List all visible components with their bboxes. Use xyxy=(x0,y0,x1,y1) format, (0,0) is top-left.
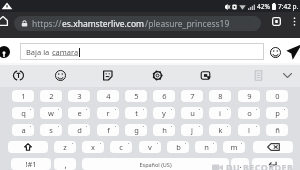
staticText: n xyxy=(204,142,209,152)
staticText: i xyxy=(219,108,221,118)
button[interactable]: m xyxy=(223,141,245,153)
staticText: camara xyxy=(52,47,79,57)
button[interactable]: v xyxy=(139,141,161,153)
button[interactable]: o xyxy=(238,107,260,119)
staticText: DU RECORDER xyxy=(226,161,294,170)
button[interactable]: g xyxy=(125,124,147,136)
button[interactable] xyxy=(252,158,293,170)
button[interactable]: , xyxy=(54,158,76,170)
button[interactable]: s xyxy=(40,124,62,136)
button[interactable]: Profile xyxy=(0,43,13,61)
staticText: c xyxy=(119,142,123,152)
button[interactable]: a xyxy=(12,124,34,136)
button[interactable]: r xyxy=(97,107,119,119)
staticText: 1 xyxy=(21,91,26,101)
button[interactable]: c xyxy=(110,141,132,153)
button[interactable]: Stickers xyxy=(96,63,118,87)
button[interactable]: Home xyxy=(0,8,10,34)
staticText: 7:42 p. xyxy=(278,2,299,11)
staticText: 7 xyxy=(190,91,195,101)
button[interactable]: !#1 xyxy=(11,158,51,170)
button[interactable]: Collapse xyxy=(279,63,295,87)
button[interactable]: 2 xyxy=(40,90,62,102)
button[interactable]: 4 xyxy=(97,90,119,102)
button[interactable]: Baja la xyxy=(20,43,264,60)
staticText: 5 xyxy=(134,91,139,101)
button[interactable]: . xyxy=(231,158,249,170)
staticText: . xyxy=(239,159,242,170)
staticText: l xyxy=(248,125,250,135)
button[interactable]: Media xyxy=(194,63,216,87)
button[interactable]: n xyxy=(195,141,217,153)
staticText: t xyxy=(135,108,138,118)
staticText: , xyxy=(64,159,67,170)
button[interactable]: l xyxy=(238,124,260,136)
staticText: j xyxy=(191,125,193,135)
button[interactable]: e xyxy=(68,107,90,119)
button[interactable] xyxy=(253,141,293,153)
staticText: 3 xyxy=(77,91,82,101)
staticText: a xyxy=(21,125,26,135)
staticText: /pleasure_princess19 xyxy=(145,18,230,30)
button[interactable]: Emoji xyxy=(266,43,284,61)
button[interactable]: 0 xyxy=(266,90,288,102)
staticText: https:// xyxy=(32,18,62,30)
staticText: r xyxy=(106,108,110,118)
button[interactable]: Tabs xyxy=(269,8,284,34)
button[interactable]: p xyxy=(266,107,288,119)
button[interactable]: f xyxy=(97,124,119,136)
button[interactable]: 3 xyxy=(68,90,90,102)
staticText: p xyxy=(275,108,280,118)
button[interactable]: h xyxy=(153,124,175,136)
button[interactable]: x xyxy=(82,141,104,153)
staticText: f xyxy=(107,125,110,135)
staticText: !#1 xyxy=(25,159,37,169)
staticText: y xyxy=(162,108,166,118)
button[interactable]: 1 xyxy=(12,90,34,102)
button[interactable]: 9 xyxy=(238,90,260,102)
button[interactable]: d xyxy=(68,124,90,136)
button[interactable]: Tokens xyxy=(7,63,29,87)
button[interactable]: j xyxy=(181,124,203,136)
staticText: 0 xyxy=(275,91,280,101)
staticText: Baja la xyxy=(26,47,52,57)
staticText: Español (US) xyxy=(139,161,172,168)
button[interactable]: t xyxy=(125,107,147,119)
button[interactable]: q xyxy=(12,107,34,119)
button[interactable]: 7 xyxy=(181,90,203,102)
staticText: w xyxy=(48,108,54,118)
button[interactable]: b xyxy=(167,141,189,153)
button[interactable]: Español (US) xyxy=(82,158,229,170)
button[interactable]: w xyxy=(40,107,62,119)
button[interactable]: u xyxy=(181,107,203,119)
staticText: x xyxy=(91,142,95,152)
staticText: h xyxy=(162,125,167,135)
button[interactable]: Notes xyxy=(247,63,269,87)
button[interactable]: 8 xyxy=(209,90,231,102)
staticText: b xyxy=(176,142,181,152)
button[interactable]: z xyxy=(54,141,76,153)
button[interactable]: i xyxy=(209,107,231,119)
staticText: 6 xyxy=(162,91,167,101)
button[interactable]: k xyxy=(209,124,231,136)
staticText: q xyxy=(21,108,26,118)
button[interactable]: y xyxy=(153,107,175,119)
button[interactable]: Send xyxy=(285,43,300,61)
staticText: z xyxy=(63,142,67,152)
staticText: es.xhamsterlive.com xyxy=(62,18,145,30)
staticText: 42% xyxy=(257,2,270,11)
staticText: 9 xyxy=(247,91,252,101)
button[interactable] xyxy=(8,141,48,153)
staticText: 2 xyxy=(49,91,54,101)
staticText: m xyxy=(230,142,238,152)
button[interactable]: More options xyxy=(289,8,300,34)
button[interactable]: 5 xyxy=(125,90,147,102)
staticText: o xyxy=(247,108,252,118)
staticText: e xyxy=(77,108,82,118)
button[interactable]: 6 xyxy=(153,90,175,102)
button[interactable]: Emoji xyxy=(49,63,71,87)
button[interactable]: https:// xyxy=(14,16,261,31)
staticText: 8 xyxy=(218,91,223,101)
button[interactable]: ñ xyxy=(266,124,288,136)
button[interactable]: Settings xyxy=(146,63,168,87)
